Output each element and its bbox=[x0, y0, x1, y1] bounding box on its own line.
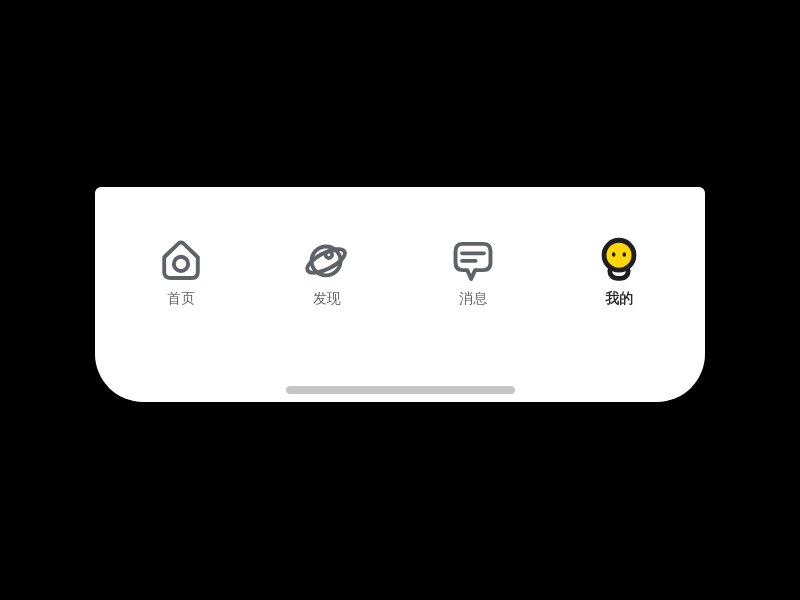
staticText: 我的 bbox=[605, 290, 633, 308]
button[interactable]: 发现 bbox=[267, 235, 387, 310]
other: 首页 bbox=[158, 237, 204, 283]
staticText: 发现 bbox=[313, 290, 341, 308]
button[interactable]: 首页 bbox=[121, 235, 241, 310]
other: 消息 bbox=[450, 237, 496, 283]
button[interactable]: 我的 bbox=[559, 235, 679, 310]
other: 我的 bbox=[596, 237, 642, 283]
other: 发现 bbox=[304, 237, 350, 283]
staticText: 消息 bbox=[459, 290, 487, 308]
button[interactable]: 消息 bbox=[413, 235, 533, 310]
staticText: 首页 bbox=[167, 290, 195, 308]
